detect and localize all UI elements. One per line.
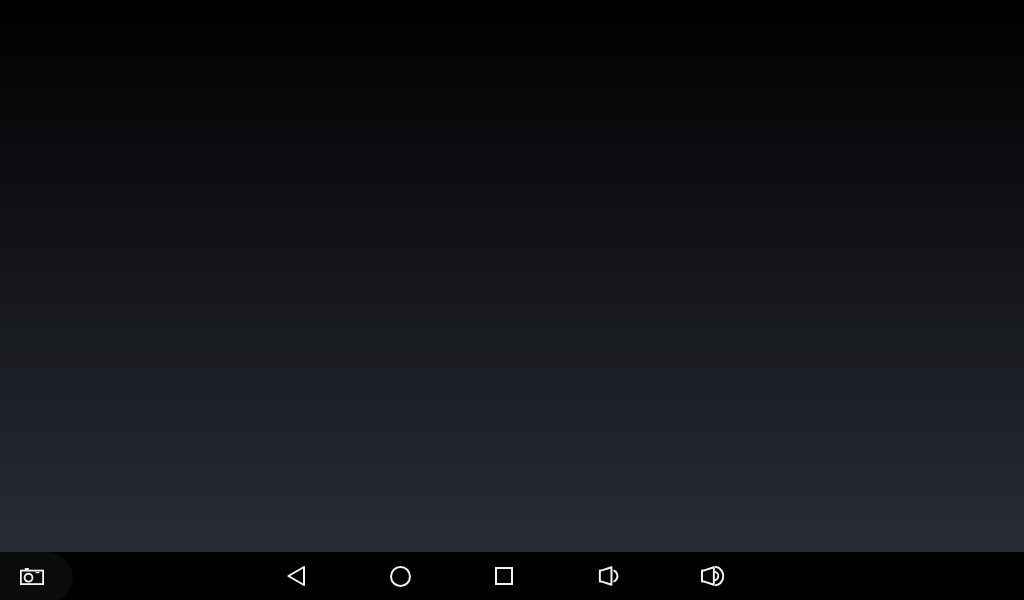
- button[interactable]: Volume down: [584, 552, 632, 600]
- button[interactable]: Home: [376, 552, 424, 600]
- button[interactable]: Volume up: [688, 552, 736, 600]
- button[interactable]: Take screenshot: [0, 552, 73, 600]
- button[interactable]: Back: [272, 552, 320, 600]
- button[interactable]: Recent apps: [480, 552, 528, 600]
